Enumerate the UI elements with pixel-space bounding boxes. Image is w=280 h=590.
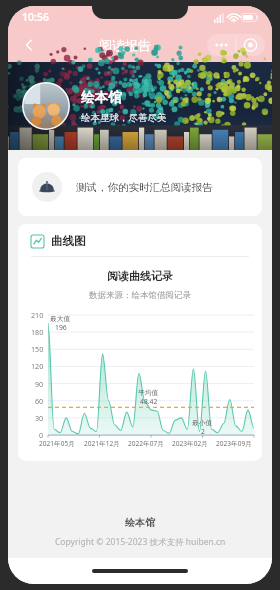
staticText: 2023年02月 — [172, 439, 208, 448]
staticText: 150 — [31, 344, 44, 354]
button[interactable]: Back — [14, 30, 44, 60]
staticText: 196 — [55, 323, 67, 332]
button[interactable]: Library avatar — [22, 82, 70, 130]
button[interactable]: 曲线图 — [18, 224, 262, 256]
button[interactable]: More options and close — [207, 34, 265, 56]
staticText: 2021年05月 — [39, 439, 75, 448]
staticText: 数据来源：绘本馆借阅记录 — [89, 290, 191, 301]
staticText: 90 — [35, 379, 44, 389]
staticText: 绘本星球，尽善尽美 — [81, 112, 167, 124]
staticText: 30 — [35, 413, 44, 423]
staticText: 180 — [31, 327, 44, 337]
staticText: 2021年12月 — [84, 439, 120, 448]
staticText: 120 — [31, 361, 44, 371]
staticText: 平均值 — [138, 388, 159, 397]
staticText: 最大值 — [50, 314, 71, 323]
staticText: 2 — [201, 427, 205, 436]
staticText: 最小值 — [192, 418, 213, 427]
staticText: 测试，你的实时汇总阅读报告 — [76, 181, 213, 194]
staticText: 210 — [31, 310, 44, 320]
staticText: Copyright © 2015-2023 技术支持 huiben.cn — [55, 536, 226, 548]
staticText: 阅读曲线记录 — [107, 269, 173, 283]
staticText: 0 — [39, 430, 44, 440]
staticText: 绘本馆 — [81, 89, 122, 106]
staticText: 2023年09月 — [216, 439, 252, 448]
staticText: 曲线图 — [51, 234, 86, 248]
staticText: 阅读报告 — [99, 37, 151, 53]
staticText: 绘本馆 — [125, 516, 155, 529]
staticText: 2022年07月 — [128, 439, 164, 448]
staticText: 60 — [35, 396, 44, 406]
staticText: 10:56 — [22, 10, 49, 24]
staticText: 48.42 — [140, 397, 158, 406]
button[interactable]: 测试，你的实时汇总阅读报告 — [18, 158, 262, 216]
